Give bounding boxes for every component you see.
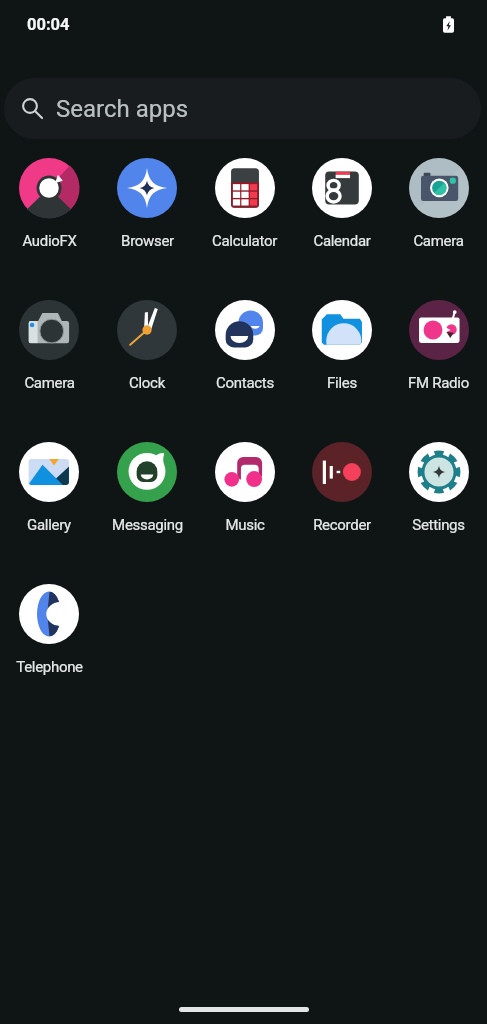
- button[interactable]: Search apps: [4, 78, 481, 139]
- button[interactable]: Recorder: [293, 434, 390, 576]
- button[interactable]: Settings: [390, 434, 487, 576]
- staticText: Browser: [121, 232, 174, 250]
- staticText: AudioFX: [22, 232, 77, 250]
- button[interactable]: Contacts: [196, 292, 293, 434]
- staticText: Music: [225, 516, 265, 534]
- staticText: Recorder: [313, 516, 371, 534]
- staticText: 00:04: [27, 15, 70, 34]
- button[interactable]: Messaging: [98, 434, 196, 576]
- staticText: Calculator: [212, 232, 277, 250]
- staticText: Files: [327, 374, 357, 392]
- staticText: Calendar: [313, 232, 371, 250]
- button[interactable]: Browser: [98, 150, 196, 292]
- button[interactable]: Gallery: [0, 434, 98, 576]
- button[interactable]: Calculator: [196, 150, 293, 292]
- button[interactable]: Telephone: [0, 576, 98, 718]
- button[interactable]: Files: [293, 292, 390, 434]
- button[interactable]: Clock: [98, 292, 196, 434]
- staticText: Contacts: [216, 374, 274, 392]
- button[interactable]: FM Radio: [390, 292, 487, 434]
- other: Battery charging: [438, 14, 459, 35]
- staticText: Camera: [24, 374, 75, 392]
- button[interactable]: Camera: [390, 150, 487, 292]
- staticText: Gallery: [27, 516, 71, 534]
- staticText: Search apps: [56, 95, 189, 123]
- button[interactable]: AudioFX: [0, 150, 98, 292]
- button[interactable]: Music: [196, 434, 293, 576]
- button[interactable]: Calendar: [293, 150, 390, 292]
- staticText: FM Radio: [408, 374, 469, 392]
- staticText: Camera: [413, 232, 464, 250]
- staticText: Settings: [412, 516, 465, 534]
- staticText: Telephone: [16, 658, 83, 676]
- staticText: Clock: [129, 374, 165, 392]
- staticText: Messaging: [112, 516, 183, 534]
- button[interactable]: Camera: [0, 292, 98, 434]
